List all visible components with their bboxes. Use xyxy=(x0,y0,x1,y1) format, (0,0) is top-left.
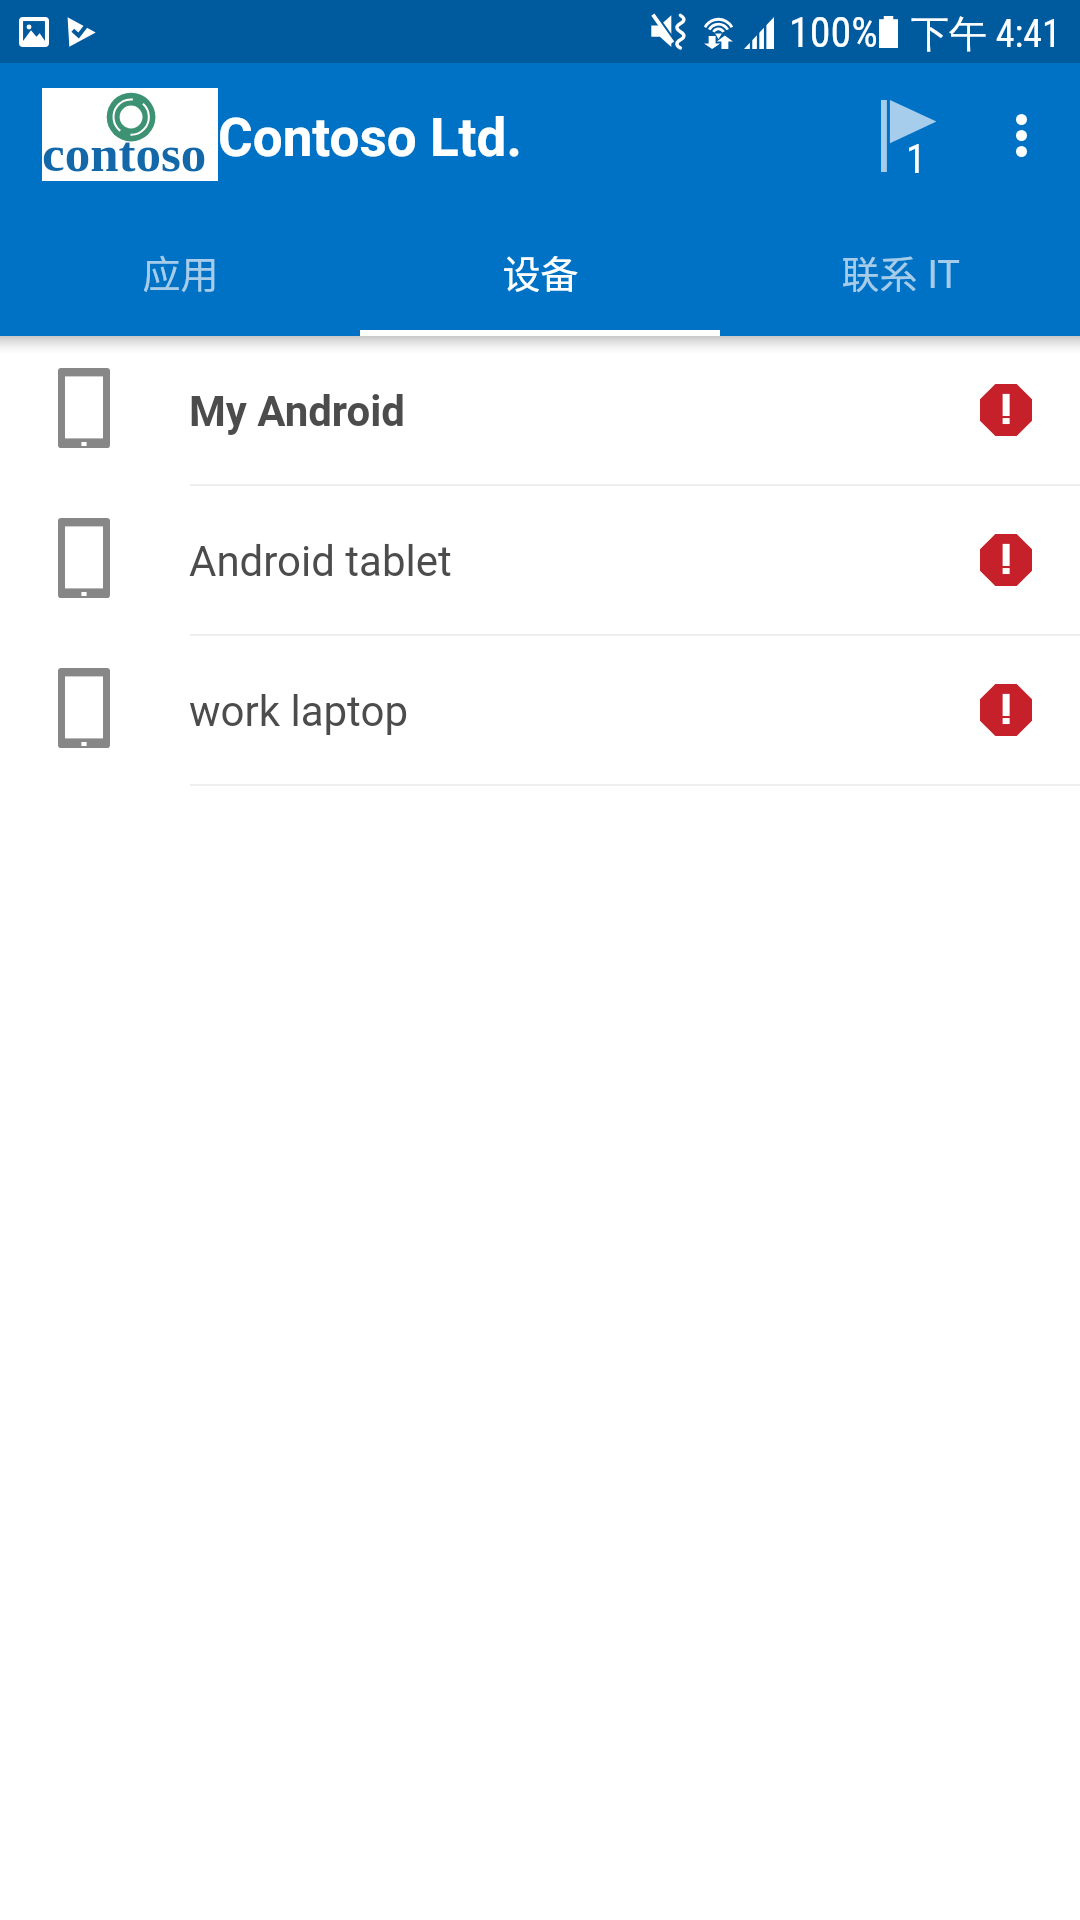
button[interactable]: My Android xyxy=(0,336,1080,484)
staticText: contoso xyxy=(42,126,207,182)
button[interactable]: More options xyxy=(974,94,1070,190)
button[interactable]: Android tablet xyxy=(0,486,1080,634)
staticText: IT xyxy=(918,253,960,298)
button[interactable]: Flagged items, 1 xyxy=(858,79,962,205)
staticText: Contoso Ltd. xyxy=(218,107,522,169)
staticText: 联系 xyxy=(841,244,918,299)
staticText: 下午 4:41 xyxy=(911,10,1061,58)
staticText: work laptop xyxy=(189,687,408,736)
button[interactable]: work laptop xyxy=(0,636,1080,784)
button[interactable]: 应用 xyxy=(0,221,360,336)
staticText: 应用 xyxy=(142,244,219,299)
button[interactable]: 联系 xyxy=(720,221,1080,336)
staticText: 100% xyxy=(789,8,878,57)
staticText: Android tablet xyxy=(189,537,452,586)
staticText: My Android xyxy=(189,387,406,436)
staticText: 设备 xyxy=(502,244,579,299)
button[interactable]: 设备 xyxy=(360,221,720,336)
staticText: 1 xyxy=(906,136,926,183)
